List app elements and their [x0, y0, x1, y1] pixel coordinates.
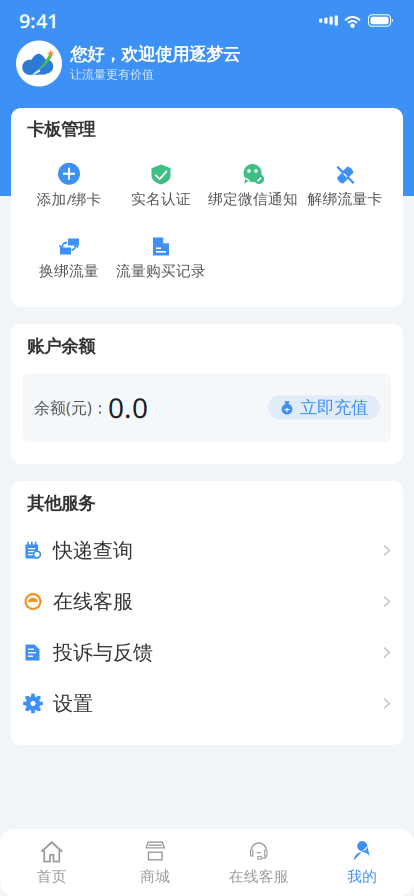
staticText: 立即充值: [300, 397, 368, 418]
staticText: 在线客服: [229, 867, 289, 885]
staticText: 流量购买记录: [116, 262, 206, 280]
staticText: 其他服务: [27, 493, 95, 514]
staticText: 账户余额: [27, 336, 95, 357]
button[interactable]: 在线客服: [207, 831, 310, 893]
staticText: 卡板管理: [27, 119, 95, 140]
button[interactable]: 我的: [310, 831, 414, 893]
staticText: 让流量更有价值: [70, 67, 154, 82]
staticText: 0.0: [108, 389, 148, 426]
button[interactable]: 立即充值: [268, 395, 380, 419]
staticText: 添加/绑卡: [36, 189, 101, 209]
staticText: 实名认证: [131, 190, 191, 208]
staticText: 9:41: [19, 7, 58, 34]
staticText: 设置: [53, 691, 93, 716]
staticText: 我的: [347, 867, 377, 885]
staticText: 您好，欢迎使用逐梦云: [70, 44, 240, 65]
staticText: 换绑流量: [39, 262, 99, 280]
staticText: 在线客服: [53, 589, 133, 614]
button[interactable]: 首页: [0, 831, 103, 893]
button[interactable]: 商城: [103, 831, 207, 893]
staticText: 投诉与反馈: [53, 640, 153, 665]
button[interactable]: 实名认证: [115, 164, 207, 207]
button[interactable]: 换绑流量: [23, 236, 115, 279]
button[interactable]: 解绑流量卡: [299, 164, 391, 207]
button[interactable]: 添加/绑卡: [23, 164, 115, 207]
staticText: 绑定微信通知: [208, 190, 298, 208]
button[interactable]: 在线客服: [23, 576, 391, 627]
staticText: 余额(元)：: [34, 397, 108, 418]
button[interactable]: 流量购买记录: [115, 236, 207, 279]
staticText: 快递查询: [53, 538, 133, 563]
staticText: 首页: [37, 867, 67, 885]
staticText: 解绑流量卡: [307, 190, 382, 208]
button[interactable]: 绑定微信通知: [207, 164, 299, 207]
button[interactable]: 快递查询: [23, 525, 391, 576]
button[interactable]: 投诉与反馈: [23, 627, 391, 678]
staticText: 商城: [140, 867, 170, 885]
button[interactable]: 设置: [23, 678, 391, 729]
